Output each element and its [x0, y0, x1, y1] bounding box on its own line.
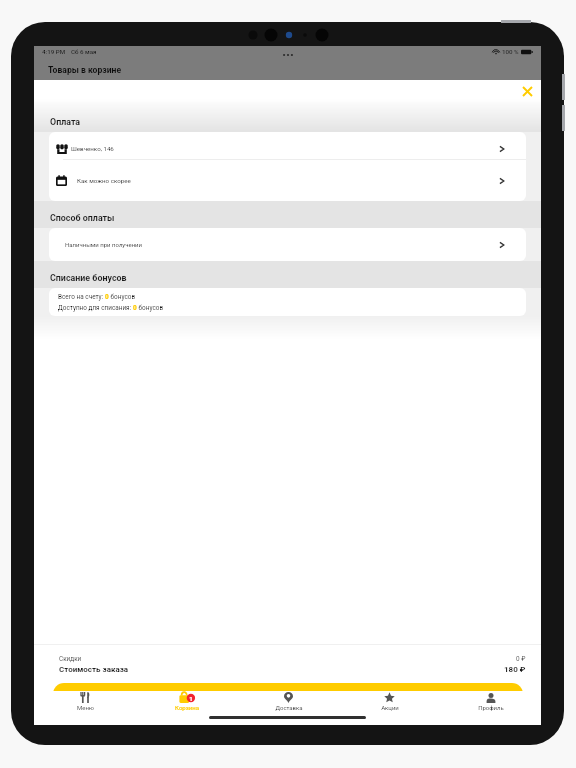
button[interactable]: Наличными при получении [49, 228, 526, 261]
staticText: Способ оплаты [50, 213, 115, 223]
staticText: 0 [133, 304, 137, 312]
button[interactable]: 1 [136, 691, 238, 716]
staticText: Оплата [50, 117, 81, 127]
staticText: Корзина [175, 704, 199, 711]
button[interactable] [53, 683, 523, 705]
staticText: 1 [189, 695, 193, 702]
staticText: Профиль [478, 704, 504, 711]
staticText: Акции [381, 704, 399, 711]
staticText: Доступно для списания: [58, 304, 133, 312]
staticText: Наличными при получении [65, 241, 143, 248]
staticText: Скидки [59, 655, 82, 663]
staticText: бонусов [109, 293, 136, 301]
button[interactable]: Профиль [440, 691, 541, 716]
staticText: Стоимость заказа [59, 665, 129, 674]
staticText: Как можно скорее [77, 177, 131, 184]
staticText: 0 ₽ [516, 655, 526, 663]
staticText: Доставка [275, 704, 303, 711]
button[interactable]: Доставка [238, 691, 339, 716]
button[interactable]: Меню [34, 691, 136, 716]
button[interactable]: Close [516, 80, 538, 102]
button[interactable]: Как можно скорее [49, 160, 526, 201]
staticText: Меню [77, 704, 94, 711]
staticText: Всего на счету: [58, 293, 105, 301]
staticText: Шевченко, 146 [71, 145, 114, 152]
staticText: 180 ₽ [504, 665, 526, 674]
staticText: бонусов [137, 304, 164, 312]
staticText: 0 [105, 293, 109, 301]
button[interactable]: Акции [339, 691, 440, 716]
staticText: 4:19 PM [42, 48, 66, 55]
staticText: Товары в корзине [48, 65, 122, 75]
staticText: 100 % [502, 48, 519, 55]
button[interactable]: Шевченко, 146 [49, 138, 526, 159]
staticText: Списание бонусов [50, 273, 127, 283]
staticText: Сб 6 мая [71, 48, 97, 55]
